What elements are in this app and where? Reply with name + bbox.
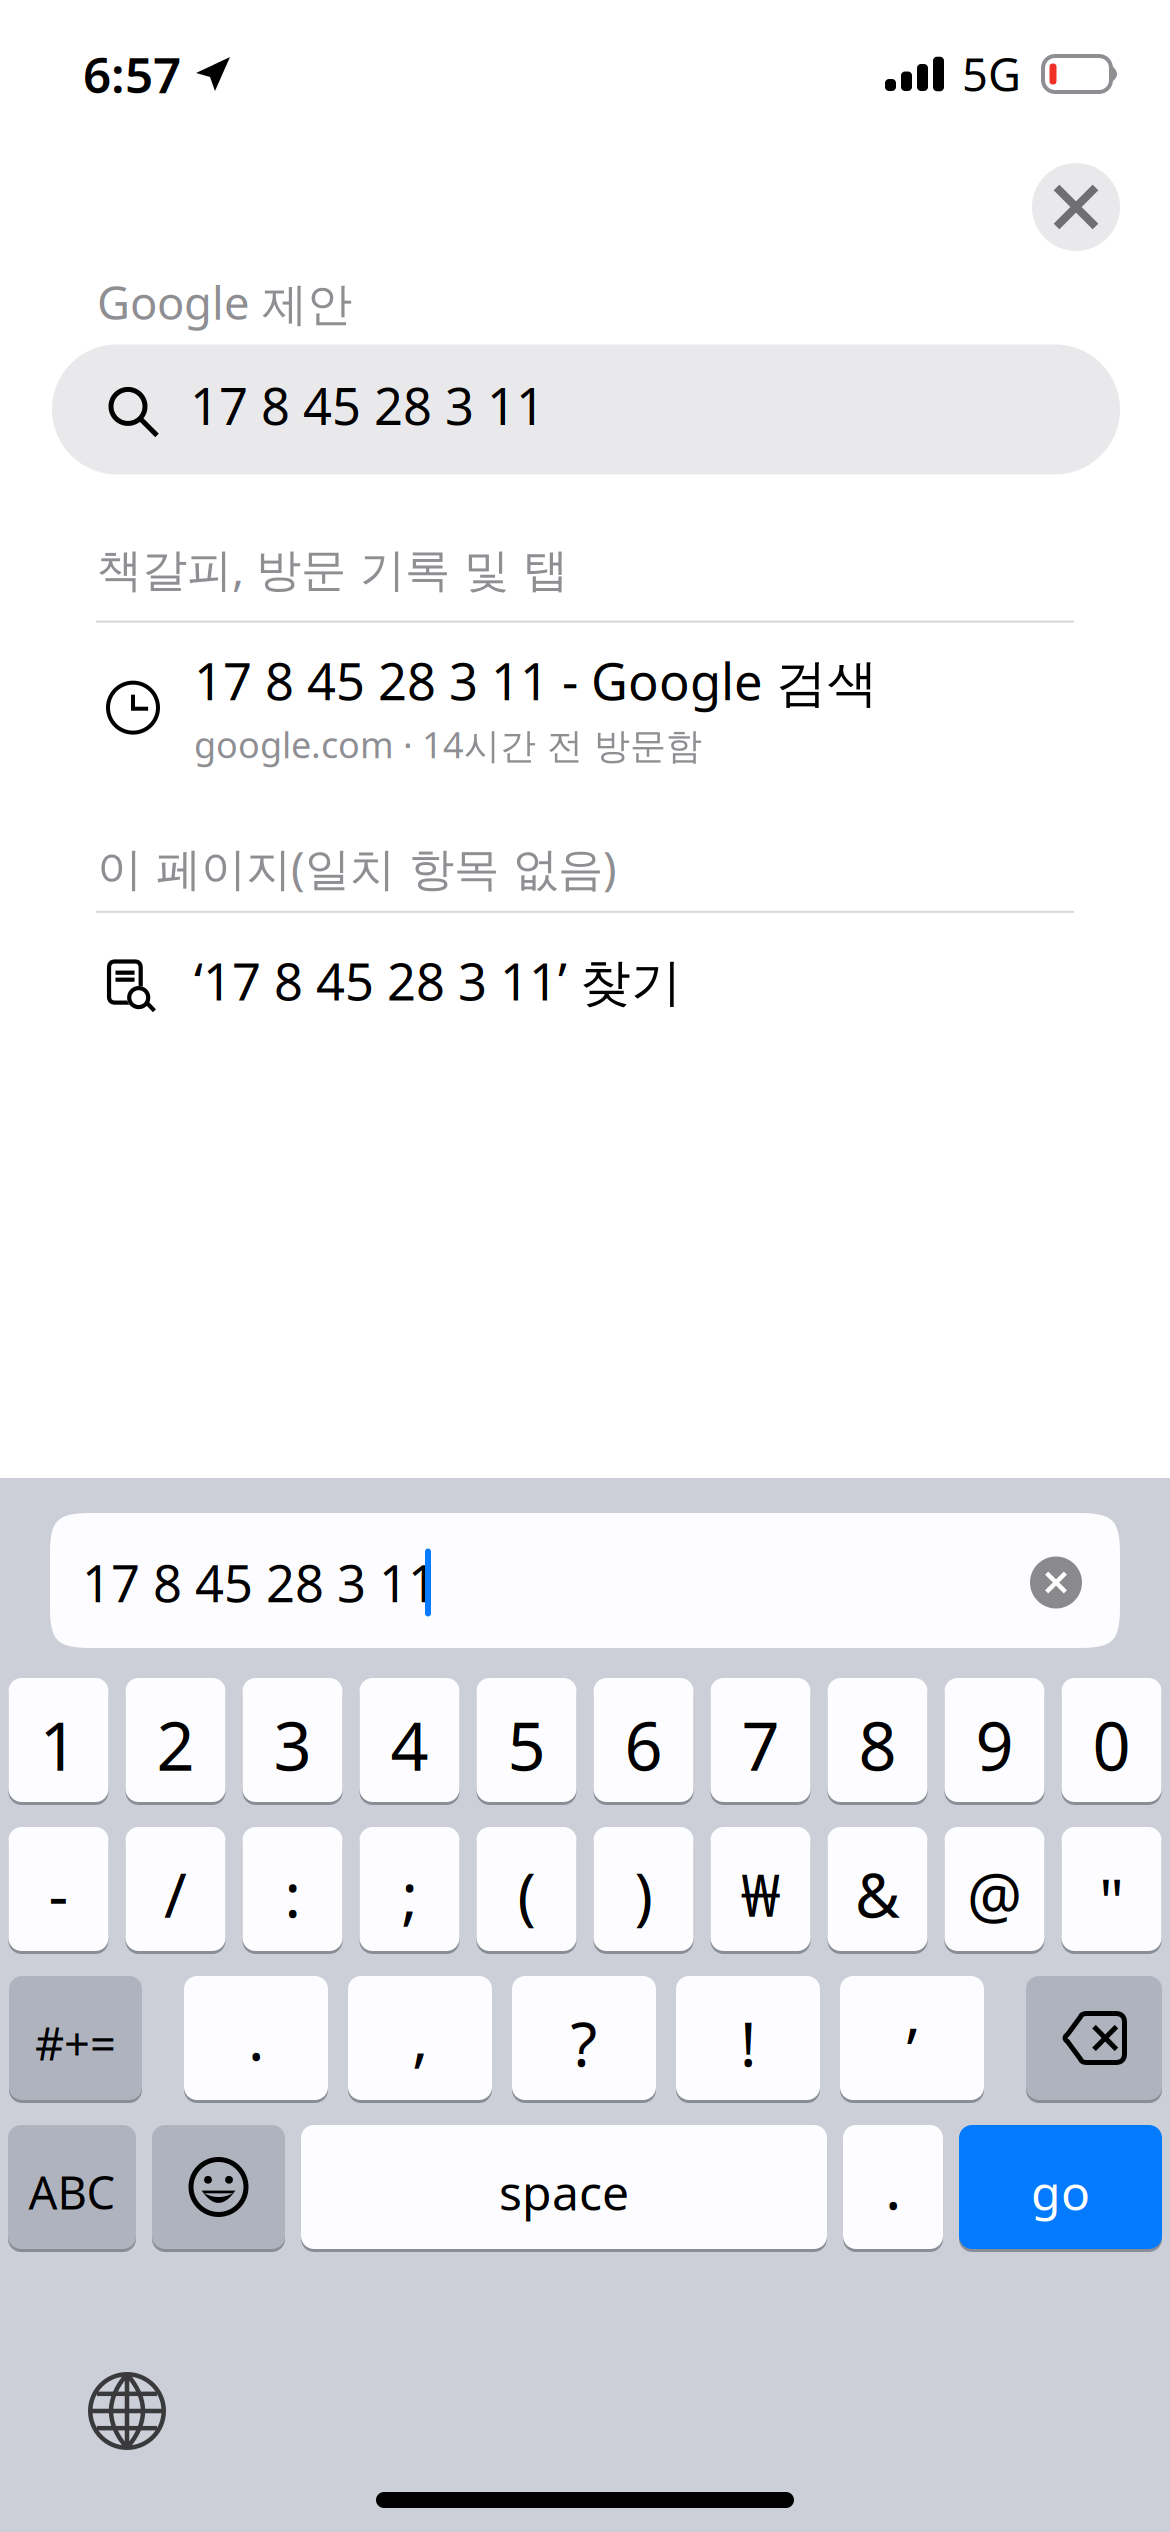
- staticText: 이 페이지(일치 항목 없음): [97, 838, 617, 898]
- staticText: ₩: [741, 1855, 780, 1933]
- button[interactable]: 1: [8, 1678, 108, 1802]
- button[interactable]: Delete: [1026, 1976, 1162, 2100]
- staticText: Google 제안: [97, 272, 352, 332]
- button[interactable]: ;: [359, 1827, 459, 1951]
- button[interactable]: 3: [242, 1678, 342, 1802]
- staticText: ): [634, 1853, 652, 1935]
- staticText: :: [284, 1853, 300, 1935]
- staticText: -: [48, 1853, 68, 1935]
- button[interactable]: space: [301, 2125, 827, 2249]
- staticText: ABC: [28, 2162, 115, 2222]
- button[interactable]: 6: [593, 1678, 693, 1802]
- button[interactable]: ₩: [710, 1827, 810, 1951]
- staticText: 9: [975, 1701, 1013, 1789]
- button[interactable]: ABC: [8, 2125, 136, 2249]
- button[interactable]: 9: [944, 1678, 1044, 1802]
- button[interactable]: 17 8 45 28 3 11: [50, 1513, 1120, 1648]
- staticText: !: [740, 2002, 756, 2084]
- button[interactable]: ?: [512, 1976, 656, 2100]
- button[interactable]: 8: [827, 1678, 927, 1802]
- button[interactable]: ): [593, 1827, 693, 1951]
- staticText: (: [517, 1853, 535, 1935]
- staticText: #+=: [35, 2013, 116, 2073]
- button[interactable]: .: [843, 2125, 943, 2249]
- button[interactable]: 4: [359, 1678, 459, 1802]
- button[interactable]: -: [8, 1827, 108, 1951]
- staticText: ‘17 8 45 28 3 11’ 찾기: [194, 947, 682, 1014]
- staticText: 8: [858, 1701, 896, 1789]
- button[interactable]: !: [676, 1976, 820, 2100]
- button[interactable]: &: [827, 1827, 927, 1951]
- button[interactable]: ’: [840, 1976, 984, 2100]
- staticText: google.com · 14시간 전 방문함: [194, 720, 702, 768]
- button[interactable]: 5: [476, 1678, 576, 1802]
- staticText: 5G: [962, 44, 1021, 104]
- staticText: ,: [412, 1996, 428, 2078]
- staticText: 4: [390, 1701, 428, 1789]
- button[interactable]: go: [959, 2125, 1162, 2249]
- button[interactable]: (: [476, 1827, 576, 1951]
- button[interactable]: 2: [125, 1678, 225, 1802]
- staticText: 17 8 45 28 3 11 - Google 검색: [194, 647, 878, 714]
- staticText: space: [499, 2160, 629, 2224]
- staticText: 7: [741, 1701, 779, 1789]
- staticText: go: [1031, 2160, 1090, 2224]
- staticText: 17 8 45 28 3 11: [190, 372, 545, 439]
- button[interactable]: @: [944, 1827, 1044, 1951]
- staticText: ;: [401, 1853, 417, 1935]
- button[interactable]: Next keyboard: [88, 2372, 166, 2450]
- staticText: 5: [507, 1701, 545, 1789]
- button[interactable]: 0: [1061, 1678, 1161, 1802]
- button[interactable]: Emoji: [152, 2125, 285, 2249]
- button[interactable]: 17 8 45 28 3 11 - Google 검색: [0, 633, 1170, 783]
- staticText: /: [164, 1853, 187, 1935]
- staticText: ": [1099, 1859, 1124, 1941]
- button[interactable]: :: [242, 1827, 342, 1951]
- staticText: 2: [156, 1701, 194, 1789]
- staticText: 1: [39, 1701, 77, 1789]
- button[interactable]: Close: [1032, 163, 1120, 251]
- staticText: ?: [570, 2002, 597, 2084]
- button[interactable]: 7: [710, 1678, 810, 1802]
- button[interactable]: #+=: [9, 1976, 142, 2100]
- staticText: &: [855, 1853, 900, 1935]
- staticText: 6:57: [83, 41, 181, 107]
- button[interactable]: .: [184, 1976, 328, 2100]
- button[interactable]: ,: [348, 1976, 492, 2100]
- staticText: .: [885, 2145, 901, 2227]
- staticText: 6: [624, 1701, 662, 1789]
- button[interactable]: ": [1061, 1827, 1161, 1951]
- staticText: .: [248, 1996, 264, 2078]
- staticText: 3: [273, 1701, 311, 1789]
- staticText: ’: [906, 2008, 917, 2090]
- button[interactable]: 17 8 45 28 3 11: [52, 344, 1120, 474]
- staticText: 17 8 45 28 3 11: [82, 1549, 437, 1616]
- staticText: 0: [1092, 1701, 1130, 1789]
- staticText: @: [967, 1853, 1022, 1935]
- staticText: 책갈피, 방문 기록 및 탭: [97, 538, 568, 599]
- button[interactable]: /: [125, 1827, 225, 1951]
- button[interactable]: ‘17 8 45 28 3 11’ 찾기: [0, 924, 1170, 1048]
